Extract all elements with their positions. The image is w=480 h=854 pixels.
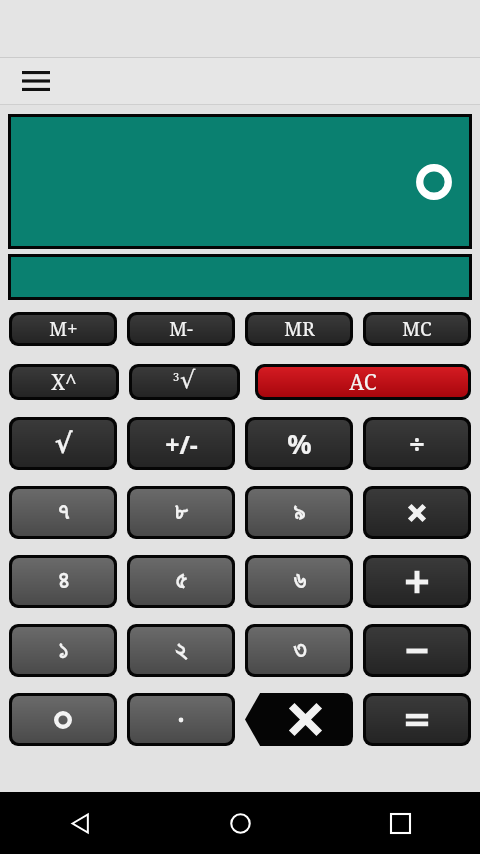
button[interactable]: Cube root [129, 364, 240, 400]
staticText: ৭ [58, 501, 69, 525]
staticText: MC [402, 316, 432, 342]
staticText: ÷ [409, 425, 425, 462]
button[interactable]: Menu [14, 63, 58, 99]
button[interactable]: Plus [363, 555, 471, 608]
staticText: M- [169, 316, 193, 342]
button[interactable]: Back [0, 792, 160, 854]
staticText: ৯ [293, 501, 305, 525]
staticText: 3 [173, 369, 180, 384]
button[interactable]: ৩ [245, 624, 353, 677]
button[interactable]: ৭ [9, 486, 117, 539]
staticText: ৫ [175, 570, 187, 594]
button[interactable]: Backspace [245, 693, 353, 746]
button[interactable]: √ [9, 417, 117, 470]
button[interactable]: Zero [9, 693, 117, 746]
button[interactable]: Home [160, 792, 320, 854]
button[interactable]: Minus [363, 624, 471, 677]
button[interactable]: Recent apps [320, 792, 480, 854]
staticText: MR [284, 316, 315, 342]
staticText: √ [54, 428, 73, 459]
button[interactable]: MC [363, 312, 471, 346]
button[interactable] [11, 117, 469, 246]
button[interactable]: Multiply [363, 486, 471, 539]
staticText: ১ [58, 639, 68, 663]
staticText: √ [180, 367, 196, 394]
button[interactable]: ৮ [127, 486, 235, 539]
button[interactable]: M- [127, 312, 235, 346]
staticText: M+ [49, 316, 78, 342]
button[interactable]: +/- [127, 417, 235, 470]
button[interactable]: ৯ [245, 486, 353, 539]
button[interactable]: ৪ [9, 555, 117, 608]
staticText: X^ [51, 368, 77, 397]
button[interactable]: M+ [9, 312, 117, 346]
staticText: +/- [165, 427, 198, 461]
button[interactable]: ৬ [245, 555, 353, 608]
button[interactable]: % [245, 417, 353, 470]
button[interactable]: X^ [9, 364, 119, 400]
button[interactable]: ২ [127, 624, 235, 677]
staticText: ৬ [293, 570, 306, 594]
staticText: ২ [175, 639, 187, 663]
staticText: ৮ [174, 501, 188, 525]
staticText: ৩ [293, 639, 306, 663]
staticText: ৪ [58, 570, 69, 594]
button[interactable]: ÷ [363, 417, 471, 470]
staticText: AC [349, 368, 377, 397]
button[interactable]: AC [255, 364, 471, 400]
button[interactable]: ৫ [127, 555, 235, 608]
staticText: % [287, 425, 312, 462]
button[interactable]: Decimal point [127, 693, 235, 746]
button[interactable]: Equals [363, 693, 471, 746]
button[interactable]: ১ [9, 624, 117, 677]
button[interactable]: MR [245, 312, 353, 346]
